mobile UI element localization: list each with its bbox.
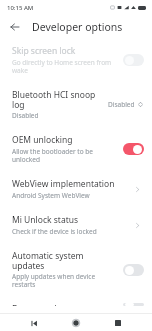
button[interactable]: Bluetooth HCI snoop log	[0, 82, 152, 127]
staticText: OEM unlocking	[12, 134, 73, 146]
staticText: Allow the bootloader to be unlocked	[12, 147, 118, 164]
button[interactable]: Toggle	[123, 54, 144, 66]
button[interactable]: Back	[6, 18, 23, 35]
button[interactable]: Disabled	[108, 100, 144, 109]
button[interactable]: Demo mode	[0, 296, 152, 313]
staticText: Disabled	[12, 111, 39, 120]
button[interactable]: Toggle	[123, 303, 144, 306]
button[interactable]: Mi Unlock status	[0, 207, 152, 243]
button[interactable]: Toggle	[123, 264, 144, 276]
staticText: Developer options	[32, 20, 123, 34]
staticText: Demo mode	[12, 303, 62, 306]
staticText: Go directly to Home screen from wake	[12, 58, 118, 75]
staticText: 10:15 AM	[7, 4, 34, 12]
staticText: Automatic system updates	[12, 250, 118, 271]
button[interactable]: OEM unlocking	[0, 127, 152, 171]
button[interactable]: Automatic system updates	[0, 243, 152, 296]
staticText: Disabled	[108, 100, 135, 109]
button[interactable]: Open	[131, 183, 144, 196]
button[interactable]: Recents	[110, 315, 126, 331]
staticText: Android System WebView	[12, 191, 90, 200]
staticText: Check if the device is locked	[12, 227, 97, 236]
staticText: Apply updates when device restarts	[12, 272, 118, 289]
button[interactable]: Skip screen lock	[0, 38, 152, 82]
button[interactable]: Toggle	[123, 143, 144, 155]
staticText: Bluetooth HCI snoop log	[12, 89, 103, 110]
staticText: Skip screen lock	[12, 45, 76, 57]
staticText: Mi Unlock status	[12, 214, 79, 226]
button[interactable]: Home	[68, 315, 84, 331]
staticText: WebView implementation	[12, 178, 115, 190]
button[interactable]: Back	[26, 315, 42, 331]
button[interactable]: WebView implementation	[0, 171, 152, 207]
button[interactable]: Open	[131, 219, 144, 232]
